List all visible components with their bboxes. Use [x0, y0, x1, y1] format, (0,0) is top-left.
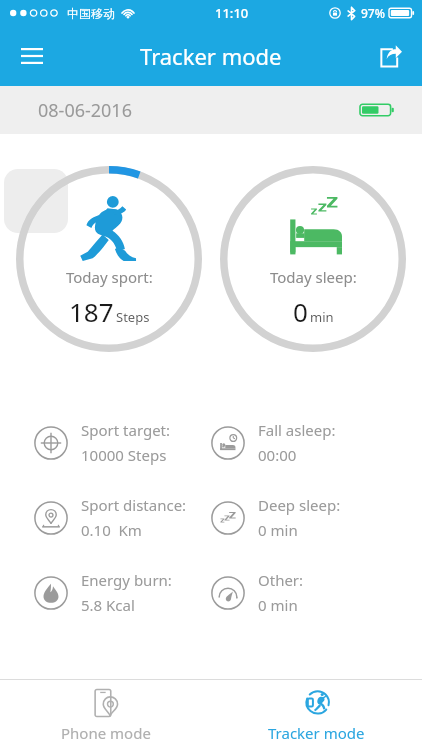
- staticText: Steps: [116, 308, 150, 326]
- staticText: 0.10 Km: [81, 520, 142, 540]
- button[interactable]: 08-06-2016: [0, 86, 422, 134]
- button[interactable]: Other: [211, 570, 388, 615]
- button[interactable]: Today sleep 0 min: [218, 164, 408, 354]
- staticText: Sport distance:: [81, 495, 187, 515]
- other: Sport distance: [34, 501, 68, 535]
- button[interactable]: Deep sleep: [211, 495, 388, 540]
- staticText: min: [310, 308, 334, 326]
- other: Fall asleep: [211, 426, 245, 460]
- button[interactable]: Share: [368, 34, 412, 78]
- staticText: Tracker mode: [268, 723, 365, 743]
- staticText: 11:10: [215, 4, 249, 22]
- other: Other: [211, 576, 245, 610]
- button[interactable]: Fall asleep: [211, 420, 388, 465]
- staticText: 0 min: [258, 520, 298, 540]
- staticText: 中国移动: [67, 6, 115, 21]
- other: Deep sleep: [211, 501, 245, 535]
- staticText: Energy burn:: [81, 570, 172, 590]
- button[interactable]: Sport distance: [34, 495, 211, 540]
- staticText: 00:00: [258, 445, 297, 465]
- staticText: 5.8 Kcal: [81, 595, 135, 615]
- staticText: Phone mode: [61, 723, 151, 743]
- staticText: Tracker mode: [140, 41, 282, 71]
- staticText: 10000 Steps: [81, 445, 167, 465]
- staticText: Today sleep:: [270, 267, 357, 287]
- button[interactable]: Tracker mode: [211, 680, 422, 750]
- staticText: Today sport:: [66, 267, 153, 287]
- staticText: Fall asleep:: [258, 420, 336, 440]
- staticText: 08-06-2016: [38, 98, 132, 123]
- button[interactable]: Menu: [8, 32, 56, 80]
- staticText: Sport target:: [81, 420, 171, 440]
- button[interactable]: Sport target: [34, 420, 211, 465]
- staticText: 187: [69, 294, 114, 329]
- staticText: 97%: [361, 5, 385, 21]
- other: Energy burn: [34, 576, 68, 610]
- button[interactable]: Energy burn: [34, 570, 211, 615]
- staticText: 0 min: [258, 595, 298, 615]
- button[interactable]: Today sport 187 steps: [14, 164, 204, 354]
- staticText: Deep sleep:: [258, 495, 341, 515]
- staticText: Other:: [258, 570, 304, 590]
- staticText: 0: [293, 294, 308, 329]
- other: Sport target: [34, 426, 68, 460]
- button[interactable]: Phone mode: [0, 680, 211, 750]
